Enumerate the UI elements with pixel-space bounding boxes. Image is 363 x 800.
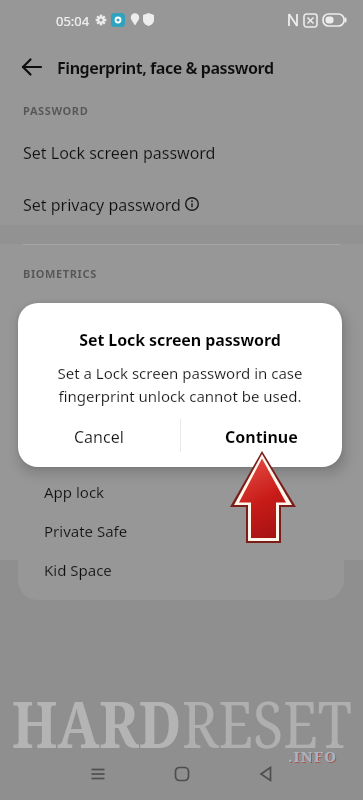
staticText: RESET bbox=[182, 680, 352, 767]
staticText: Private Safe bbox=[44, 521, 128, 541]
staticText: App lock bbox=[44, 482, 105, 502]
staticText: Set Lock screen password bbox=[18, 329, 342, 351]
staticText: Set privacy password bbox=[23, 194, 181, 216]
staticText: BIOMETRICS bbox=[23, 266, 97, 281]
button[interactable]: Set privacy password bbox=[23, 194, 181, 216]
staticText: HARD bbox=[12, 680, 182, 767]
button[interactable]: Cancel bbox=[18, 414, 180, 460]
staticText: .INFO bbox=[288, 746, 338, 766]
staticText: Fingerprint, face & password bbox=[57, 57, 274, 79]
button[interactable] bbox=[140, 752, 224, 796]
button[interactable] bbox=[56, 752, 140, 796]
staticText: PASSWORD bbox=[23, 103, 89, 118]
staticText: 05:04 bbox=[56, 12, 90, 30]
staticText: Continue bbox=[225, 426, 298, 448]
button[interactable]: Set Lock screen password bbox=[23, 142, 216, 164]
button[interactable] bbox=[224, 752, 308, 796]
staticText: Set Lock screen password bbox=[23, 142, 216, 164]
staticText: .INFO bbox=[289, 747, 339, 767]
staticText: Cancel bbox=[74, 426, 124, 448]
button[interactable]: Continue bbox=[180, 414, 342, 460]
staticText: Kid Space bbox=[44, 560, 112, 580]
staticText: Set a Lock screen password in case finge… bbox=[18, 363, 342, 406]
button[interactable] bbox=[10, 52, 54, 82]
